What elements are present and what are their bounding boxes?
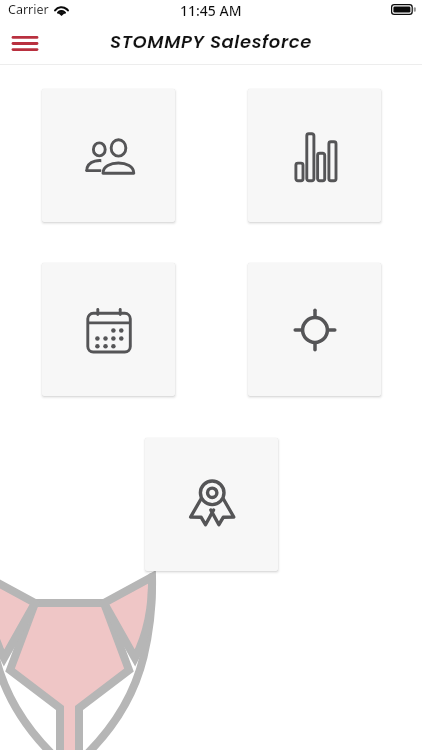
button[interactable]: Calendar	[42, 263, 175, 396]
staticText: 11:45 AM	[180, 1, 242, 20]
button[interactable]: Contacts	[42, 89, 175, 222]
staticText: STOMMPY Salesforce	[110, 29, 312, 54]
button[interactable]: Menu	[6, 24, 44, 62]
button[interactable]: Reports	[248, 89, 381, 222]
staticText: Carrier	[8, 1, 49, 18]
button[interactable]: Location	[248, 263, 381, 396]
button[interactable]: Awards	[145, 438, 278, 571]
